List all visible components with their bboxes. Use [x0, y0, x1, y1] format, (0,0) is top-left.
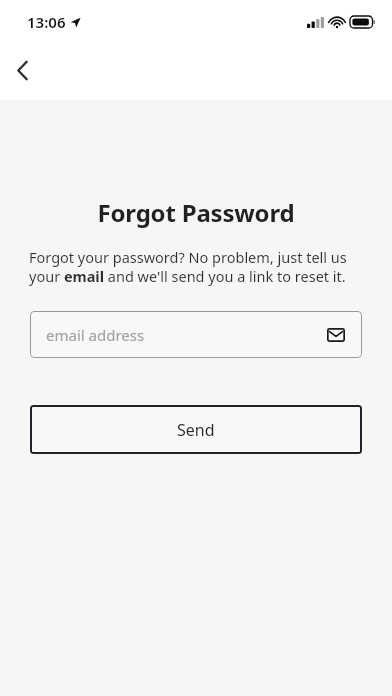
staticText: email address: [46, 325, 145, 345]
button[interactable]: email address: [30, 311, 362, 358]
staticText: Forgot Password: [0, 196, 392, 229]
staticText: Send: [177, 419, 215, 441]
button[interactable]: Back: [4, 52, 40, 88]
staticText: 13:06: [27, 12, 66, 32]
staticText: Forgot your password? No problem, just t…: [29, 247, 366, 286]
button[interactable]: Send: [30, 405, 362, 454]
